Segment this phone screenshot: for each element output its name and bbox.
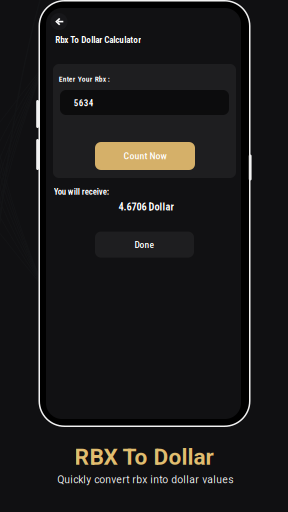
button[interactable]: Done <box>95 232 194 258</box>
staticText: Done <box>134 239 154 250</box>
staticText: You will receive: <box>54 187 109 197</box>
staticText: Count Now <box>123 150 166 162</box>
staticText: Enter Your Rbx : <box>59 75 110 84</box>
staticText: Quickly convert rbx into dollar values <box>57 473 233 486</box>
staticText: RBX To Dollar <box>75 444 214 470</box>
staticText: 4.6706 Dollar <box>118 201 173 213</box>
staticText: Rbx To Dollar Calculator <box>55 34 141 45</box>
staticText: 5634 <box>74 98 94 108</box>
button[interactable]: Count Now <box>95 142 195 170</box>
button[interactable]: Back <box>48 11 70 33</box>
